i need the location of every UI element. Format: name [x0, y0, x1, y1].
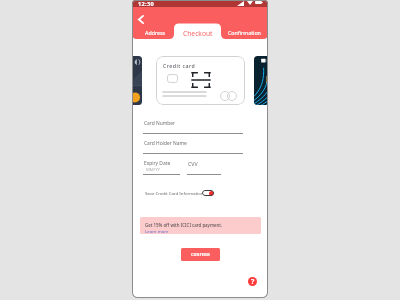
button[interactable]: CONFIRM	[181, 248, 220, 261]
staticText: Credit card	[163, 62, 196, 69]
staticText: Learn more	[145, 228, 169, 234]
button[interactable]	[132, 56, 142, 105]
button[interactable]: Credit card	[156, 56, 245, 105]
staticText: Card Holder Name	[144, 140, 187, 147]
staticText: CVV	[188, 160, 198, 167]
staticText: Save Credit Card Information	[145, 190, 204, 196]
button[interactable]: Checkout	[174, 24, 221, 40]
button[interactable]: Address	[136, 25, 174, 39]
staticText: CONFIRM	[191, 252, 210, 257]
staticText: Confirmation	[228, 29, 261, 36]
button[interactable]: Confirmation	[221, 25, 268, 39]
button[interactable]: Expiry Date	[143, 158, 181, 169]
button[interactable]: Card Holder Name	[143, 137, 243, 153]
staticText: ?	[251, 277, 255, 286]
button[interactable]	[254, 56, 268, 105]
staticText: Address	[145, 29, 166, 36]
staticText: Checkout	[183, 29, 213, 38]
button[interactable]: CVV	[187, 158, 223, 169]
button[interactable]: Card Number	[143, 117, 243, 133]
staticText: 12:30	[138, 0, 155, 7]
staticText: MM/YY	[146, 167, 160, 173]
button[interactable]: Save Credit Card Information	[143, 187, 214, 199]
staticText: Get 15% off with ICICI card payment.	[145, 222, 223, 228]
button[interactable]: Back	[134, 11, 148, 27]
button[interactable]: Get 15% off with ICICI card payment.	[140, 217, 261, 234]
staticText: Card Number	[144, 120, 176, 127]
staticText: Expiry Date	[144, 160, 171, 167]
button[interactable]: Help	[248, 277, 257, 286]
